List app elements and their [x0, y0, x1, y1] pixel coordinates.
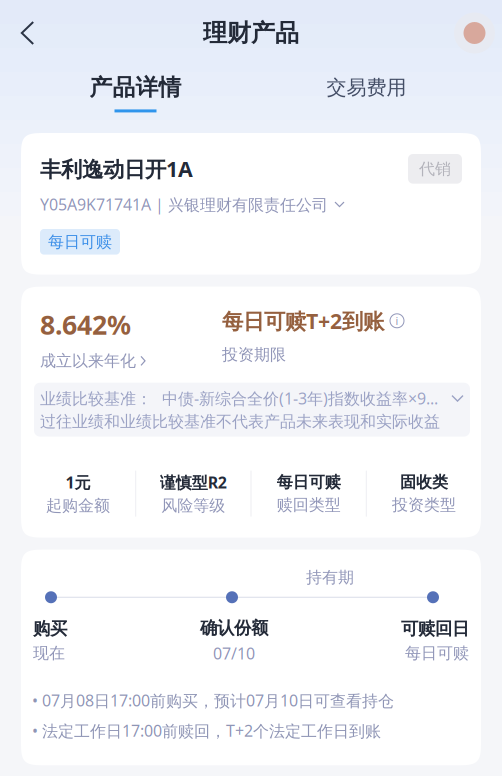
staticText: 每日可赎T+2到账	[222, 307, 384, 335]
staticText: 风险等级	[161, 496, 225, 516]
staticText: 可赎回日	[401, 618, 469, 639]
staticText: 代销	[419, 159, 451, 179]
staticText: • 法定工作日17:00前赎回，T+2个法定工作日到账	[32, 720, 381, 741]
staticText: 产品详情	[89, 74, 181, 101]
staticText: i	[395, 314, 398, 328]
button[interactable]: 成立以来年化	[40, 351, 146, 371]
staticText: 每日可赎	[277, 472, 341, 492]
button[interactable]: Back	[0, 5, 55, 60]
staticText: 每日可赎	[48, 232, 112, 252]
staticText: 成立以来年化	[40, 351, 136, 371]
staticText: 持有期	[306, 568, 354, 587]
staticText: 投资期限	[222, 345, 286, 365]
staticText: 购买	[33, 618, 67, 639]
staticText: 每日可赎	[405, 643, 469, 663]
staticText: 业绩比较基准： 中债-新综合全价(1-3年)指数收益率×9...	[40, 388, 438, 409]
staticText: 1元	[66, 472, 91, 493]
button[interactable]: 交易费用	[299, 66, 434, 120]
staticText: 07/10	[213, 642, 255, 664]
staticText: 8.642%	[40, 307, 131, 342]
button[interactable]: 业绩比较基准： 中债-新综合全价(1-3年)指数收益率×9...	[34, 383, 470, 437]
staticText: 过往业绩和业绩比较基准不代表产品未来表现和实际收益	[40, 412, 440, 432]
staticText: 理财产品	[203, 18, 299, 48]
staticText: Y05A9K71741A | 兴银理财有限责任公司	[40, 194, 328, 215]
staticText: • 07月08日17:00前购买，预计07月10日可查看持仓	[32, 690, 394, 711]
staticText: 谨慎型R2	[160, 472, 227, 493]
staticText: 现在	[33, 643, 65, 663]
staticText: 交易费用	[326, 75, 406, 100]
staticText: 确认份额	[200, 617, 268, 639]
staticText: 投资类型	[392, 495, 456, 515]
staticText: 起购金额	[46, 496, 110, 516]
staticText: 固收类	[400, 472, 448, 492]
staticText: 赎回类型	[277, 495, 341, 515]
button[interactable]: Profile	[447, 5, 502, 60]
staticText: 丰利逸动日开1A	[40, 155, 193, 183]
button[interactable]: 产品详情	[68, 66, 203, 120]
